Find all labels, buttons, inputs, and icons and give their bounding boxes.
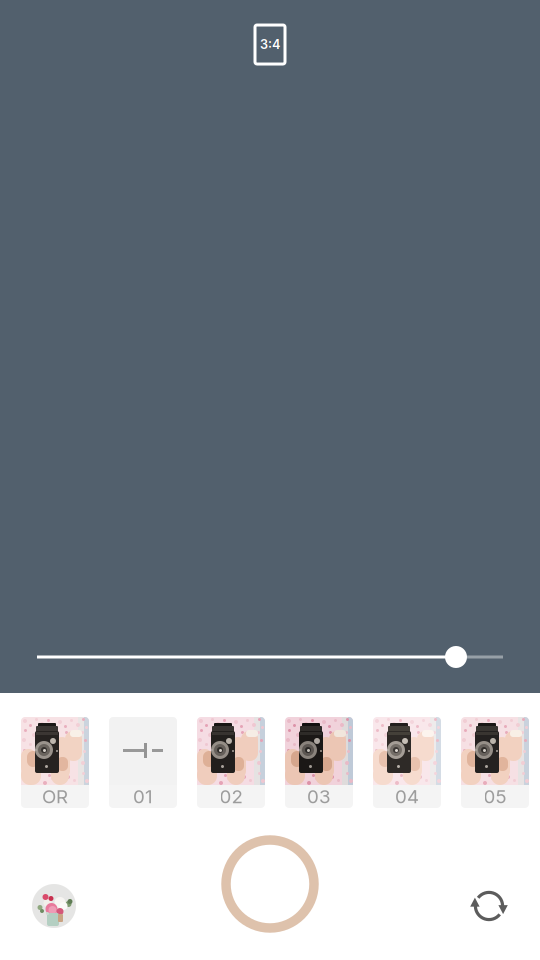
button[interactable]: 01 (109, 717, 177, 808)
button[interactable]: 3:4 (255, 25, 285, 64)
button[interactable]: 05 (461, 717, 529, 808)
staticText: 3:4 (260, 37, 280, 52)
button[interactable]: 04 (373, 717, 441, 808)
staticText: 03 (307, 785, 331, 808)
staticText: OR (42, 785, 68, 808)
staticText: 01 (133, 785, 153, 808)
button[interactable]: Switch camera (471, 888, 507, 924)
staticText: 02 (219, 785, 242, 808)
button[interactable]: OR (21, 717, 89, 808)
button[interactable]: 02 (197, 717, 265, 808)
staticText: 05 (483, 785, 506, 808)
button[interactable]: Take photo (218, 832, 322, 936)
staticText: 04 (395, 785, 419, 808)
button[interactable]: Photo library (32, 884, 76, 928)
button[interactable]: 03 (285, 717, 353, 808)
